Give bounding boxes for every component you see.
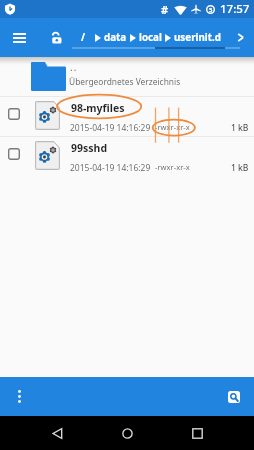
staticText: local [139,31,162,44]
button[interactable]: / [81,31,86,44]
staticText: # [161,2,169,17]
staticText: -rwxr-xr-x [155,162,190,172]
staticText: 1 kB [231,122,249,134]
button[interactable]: Home [107,416,147,450]
staticText: .. [70,60,78,74]
button[interactable]: Open navigation drawer [6,18,32,57]
staticText: 2015-04-19 14:16:29 [70,162,151,174]
staticText: 1 kB [231,162,249,174]
button[interactable]: Mount read write [44,18,70,57]
button[interactable]: Search [228,391,240,403]
button[interactable]: More options [6,377,32,416]
staticText: 98-myfiles [71,101,125,115]
button[interactable]: userinit.d [162,31,221,44]
button[interactable]: Select 98-myfiles [4,104,24,124]
button[interactable]: Back [37,416,77,450]
staticText: / [81,31,86,44]
button[interactable]: Recent apps [177,416,217,450]
staticText: data [104,31,127,44]
staticText: 99sshd [71,141,108,155]
staticText: 2015-04-19 14:16:29 [70,122,151,134]
button[interactable]: .. [0,58,254,96]
button[interactable]: data [92,31,127,44]
button[interactable]: Select 98-myfiles [0,96,254,136]
button[interactable]: Select 99sshd [0,136,254,176]
staticText: 5 [209,6,213,14]
button[interactable]: local [127,31,162,44]
staticText: Übergeordnetes Verzeichnis [69,76,181,87]
staticText: -rwxr-xr-x [155,122,190,132]
button[interactable]: Select 99sshd [4,144,24,164]
button[interactable]: Scroll path right [230,18,250,57]
staticText: 17:57 [220,1,250,17]
staticText: userinit.d [174,31,221,44]
